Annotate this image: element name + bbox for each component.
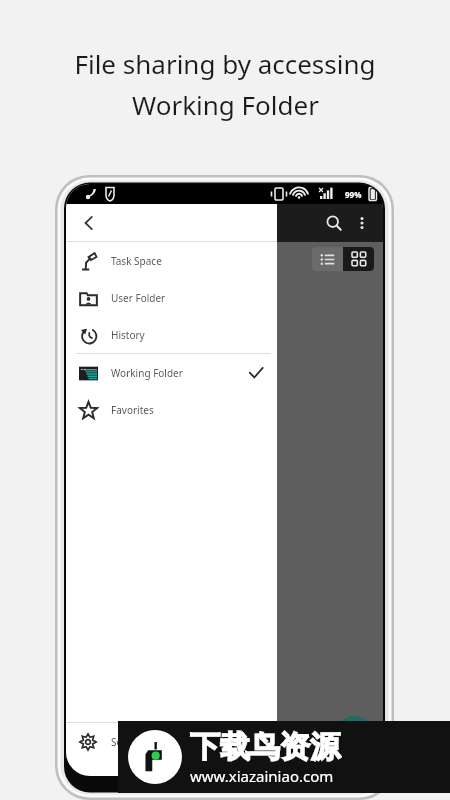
button[interactable]: More options: [349, 210, 375, 236]
staticText: Working Folder: [132, 87, 319, 122]
button[interactable]: [177, 288, 273, 376]
button[interactable]: List view: [312, 247, 343, 271]
button[interactable]: Add: [335, 716, 373, 754]
staticText: www.xiazainiao.com: [190, 766, 334, 786]
staticText: Task Space: [111, 254, 162, 268]
button[interactable]: Grid view: [343, 247, 374, 271]
staticText: 下载鸟资源: [190, 728, 340, 766]
button[interactable]: Favorites: [66, 391, 277, 428]
staticText: 99%: [345, 189, 362, 200]
button[interactable]: Refresh: [74, 250, 92, 268]
button[interactable]: User Folder: [66, 279, 277, 316]
button[interactable]: Working Folder: [66, 354, 277, 391]
button[interactable]: History: [66, 316, 277, 353]
staticText: History: [111, 328, 145, 342]
button[interactable]: Task Space: [66, 242, 277, 279]
button[interactable]: Settings: [66, 723, 277, 760]
staticText: Favorites: [111, 403, 154, 417]
staticText: File sharing by accessing: [74, 46, 376, 81]
staticText: User Folder: [111, 291, 166, 305]
staticText: Settings: [111, 735, 150, 749]
staticText: Working Folder: [111, 366, 183, 380]
button[interactable]: Back: [76, 210, 102, 236]
button[interactable]: Search: [319, 208, 349, 238]
